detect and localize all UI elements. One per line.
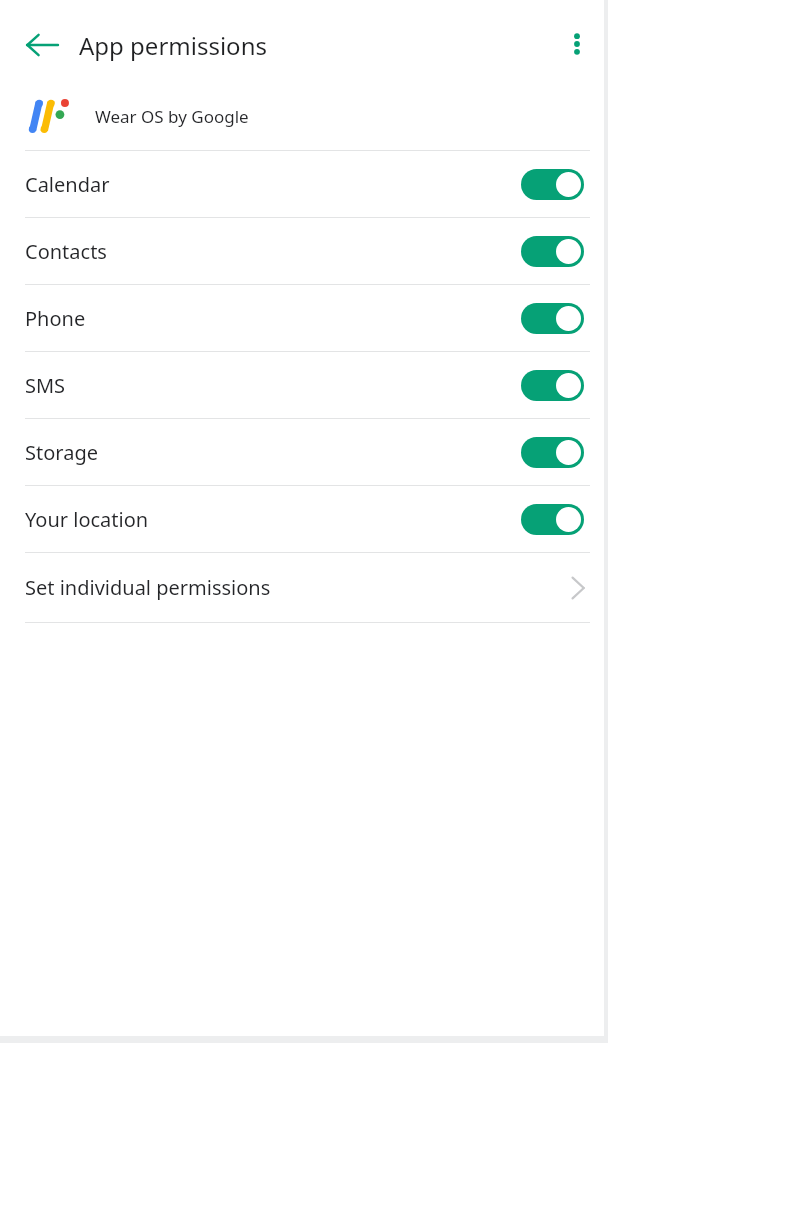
- staticText: Contacts: [25, 238, 107, 265]
- staticText: SMS: [25, 372, 66, 399]
- staticText: Set individual permissions: [25, 574, 271, 601]
- button[interactable]: Wear OS by Google: [0, 78, 608, 150]
- staticText: Your location: [25, 506, 149, 533]
- staticText: Storage: [25, 439, 98, 466]
- button[interactable]: Your location permission toggle, on: [521, 504, 584, 535]
- staticText: App permissions: [79, 29, 267, 62]
- button[interactable]: Contacts permission toggle, on: [521, 236, 584, 267]
- button[interactable]: Storage: [0, 419, 608, 485]
- button[interactable]: Calendar permission toggle, on: [521, 169, 584, 200]
- button[interactable]: SMS permission toggle, on: [521, 370, 584, 401]
- staticText: Calendar: [25, 171, 110, 198]
- button[interactable]: Storage permission toggle, on: [521, 437, 584, 468]
- button[interactable]: SMS: [0, 352, 608, 418]
- button[interactable]: Your location: [0, 486, 608, 552]
- button[interactable]: Navigate up: [14, 17, 70, 73]
- staticText: Phone: [25, 305, 86, 332]
- button[interactable]: Phone permission toggle, on: [521, 303, 584, 334]
- button[interactable]: Phone: [0, 285, 608, 351]
- button[interactable]: Contacts: [0, 218, 608, 284]
- button[interactable]: Calendar: [0, 151, 608, 217]
- button[interactable]: Set individual permissions: [0, 553, 608, 622]
- button[interactable]: More options: [550, 17, 604, 71]
- staticText: Wear OS by Google: [95, 105, 249, 128]
